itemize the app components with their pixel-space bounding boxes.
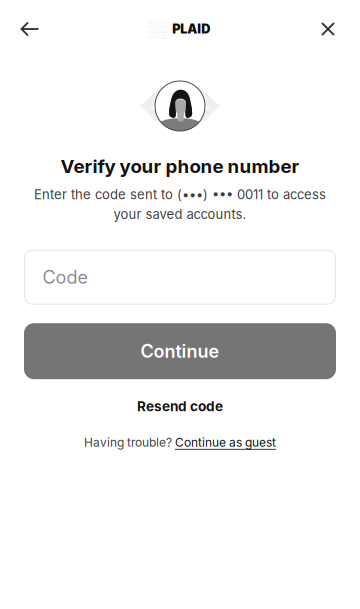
staticText: your saved accounts. [113, 206, 246, 222]
button[interactable]: Continue [24, 323, 336, 379]
staticText: Continue [140, 340, 219, 362]
staticText: PLAID [172, 21, 210, 37]
button[interactable]: Continue as guest [175, 435, 276, 450]
staticText: Continue as guest [175, 435, 276, 450]
button[interactable]: Resend code [120, 393, 240, 419]
staticText: Resend code [137, 398, 223, 414]
staticText: Enter the code sent to (•••) ••• 0011 to… [34, 187, 326, 202]
staticText: Verify your phone number [60, 155, 299, 178]
button[interactable]: Close [307, 8, 349, 50]
button[interactable]: Back [9, 8, 51, 50]
staticText: Having trouble? [84, 435, 172, 450]
staticText: Code [42, 266, 87, 288]
